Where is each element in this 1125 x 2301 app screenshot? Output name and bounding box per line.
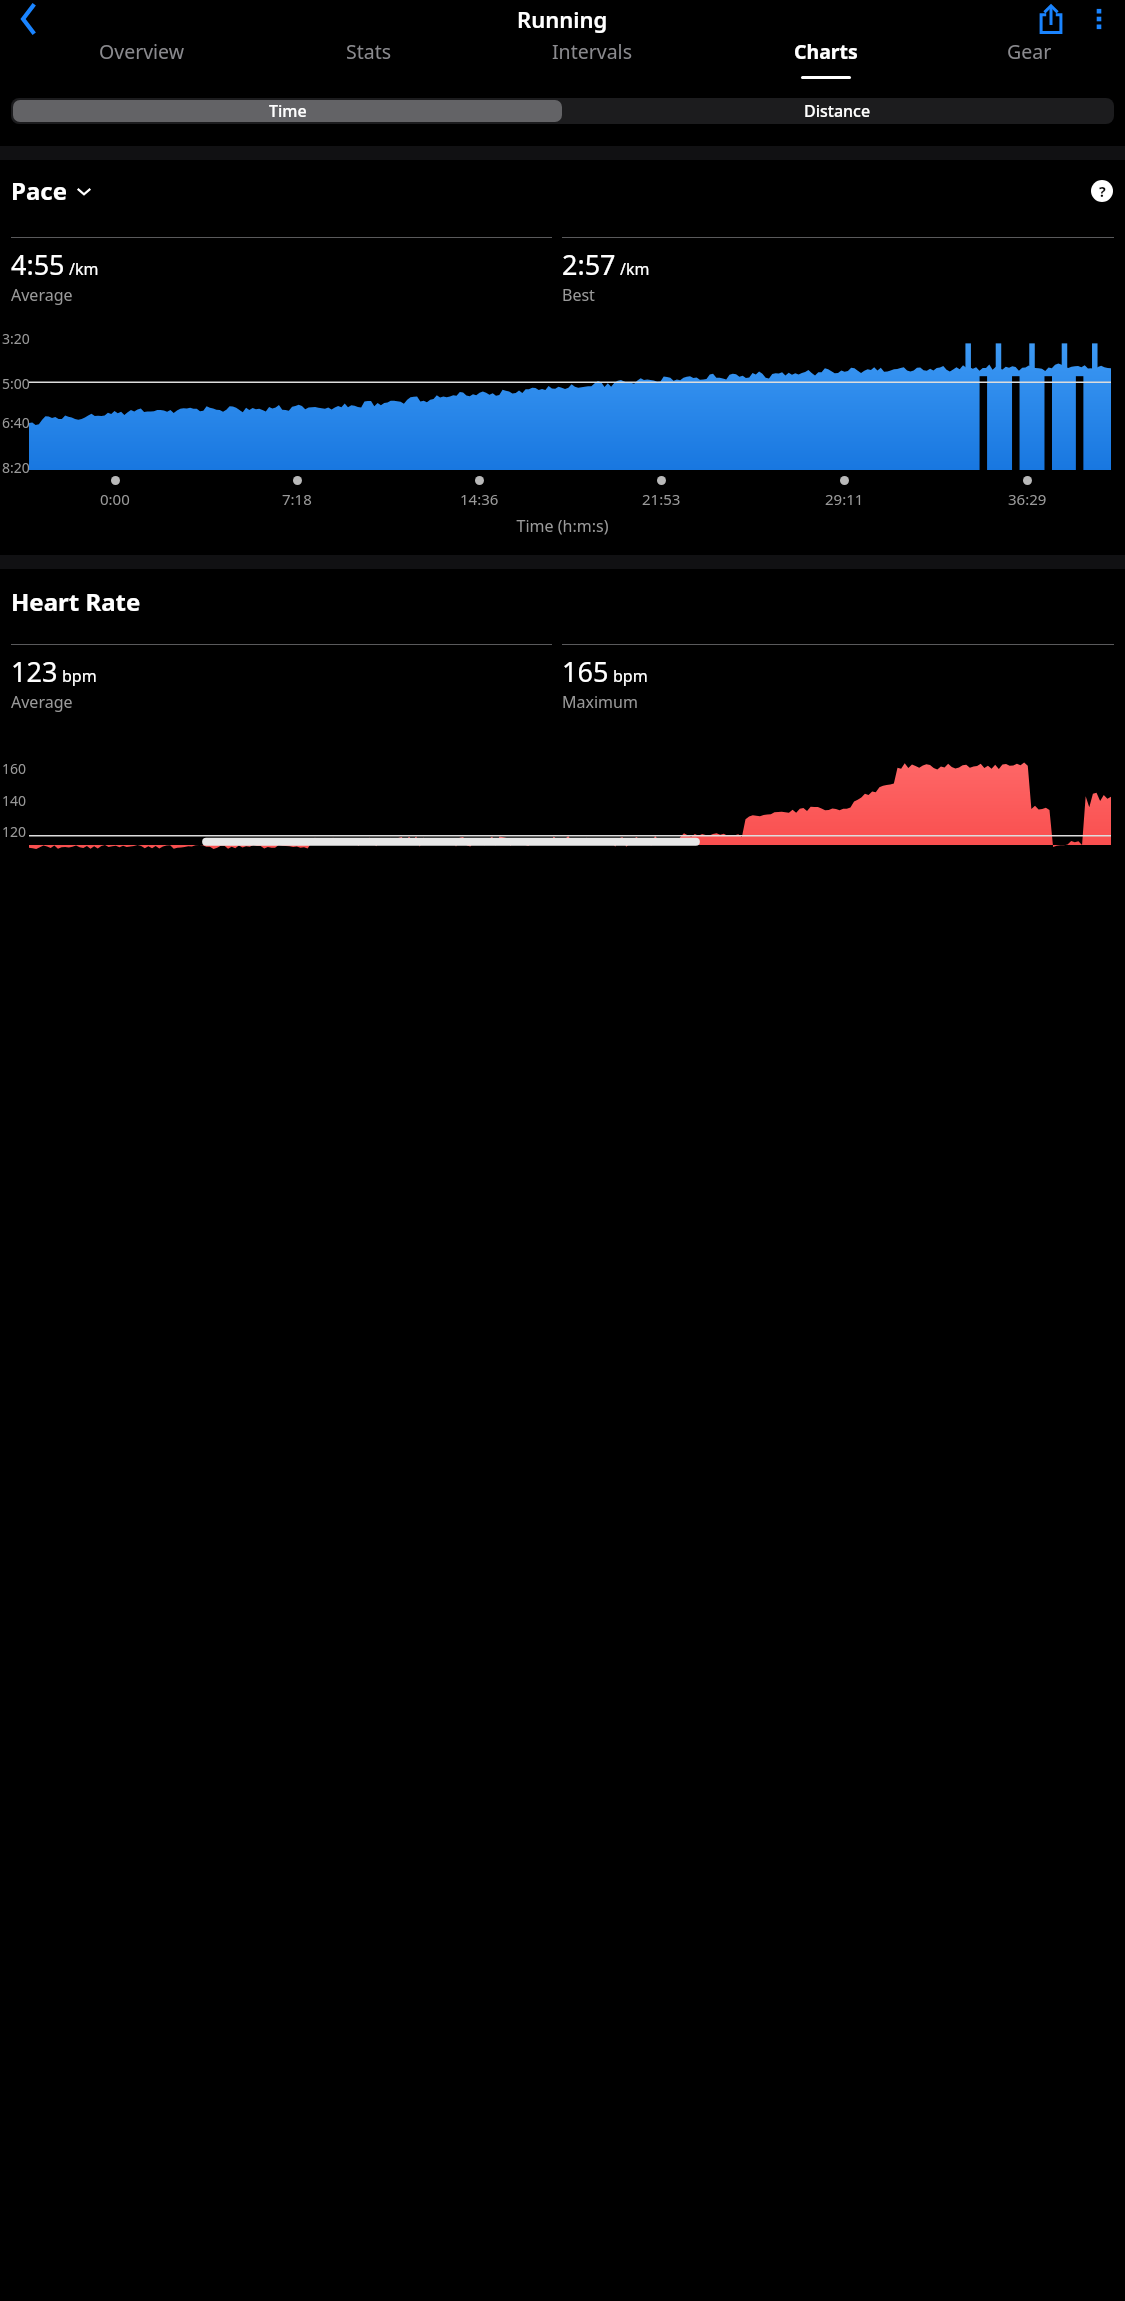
- button[interactable]: Charts: [718, 38, 933, 84]
- staticText: /km: [620, 258, 650, 280]
- staticText: Time (h:m:s): [0, 515, 1125, 537]
- button[interactable]: Overview: [10, 38, 273, 84]
- staticText: 140: [2, 791, 27, 810]
- staticText: ?: [1099, 182, 1106, 201]
- button[interactable]: Gear: [933, 38, 1125, 84]
- staticText: Stats: [346, 38, 392, 65]
- staticText: 7:18: [282, 489, 312, 509]
- staticText: 123: [11, 653, 58, 690]
- staticText: 8:20: [2, 458, 30, 477]
- staticText: 5:00: [2, 374, 30, 393]
- staticText: 36:29: [1008, 489, 1047, 509]
- staticText: Pace: [11, 174, 67, 207]
- staticText: 4:55: [11, 246, 65, 283]
- staticText: Time: [269, 100, 307, 122]
- button[interactable]: Back: [6, 0, 50, 38]
- staticText: 2:57: [562, 246, 616, 283]
- staticText: Best: [562, 284, 595, 306]
- staticText: Average: [11, 691, 73, 713]
- staticText: Average: [11, 284, 73, 306]
- staticText: Overview: [99, 38, 185, 65]
- staticText: Maximum: [562, 691, 638, 713]
- staticText: Heart Rate: [11, 585, 141, 618]
- staticText: 165: [562, 653, 609, 690]
- button[interactable]: Share: [1027, 0, 1075, 38]
- staticText: Gear: [1007, 38, 1052, 65]
- staticText: Intervals: [552, 38, 632, 65]
- staticText: 3:20: [2, 329, 30, 348]
- button[interactable]: Intervals: [465, 38, 718, 84]
- staticText: bpm: [62, 665, 97, 687]
- staticText: 29:11: [825, 489, 864, 509]
- staticText: /km: [69, 258, 99, 280]
- button[interactable]: Pace: [11, 174, 93, 207]
- staticText: bpm: [613, 665, 648, 687]
- staticText: 21:53: [642, 489, 681, 509]
- staticText: Distance: [804, 100, 871, 122]
- button[interactable]: Time: [13, 100, 562, 122]
- staticText: 14:36: [460, 489, 499, 509]
- staticText: 6:40: [2, 413, 30, 432]
- button[interactable]: Distance: [562, 100, 1112, 122]
- staticText: 0:00: [100, 489, 130, 509]
- staticText: Charts: [794, 38, 858, 65]
- button[interactable]: Help: [1090, 179, 1114, 203]
- staticText: Running: [517, 4, 608, 34]
- button[interactable]: Stats: [273, 38, 465, 84]
- staticText: 120: [2, 822, 27, 841]
- staticText: 160: [2, 759, 27, 778]
- button[interactable]: More options: [1075, 0, 1123, 38]
